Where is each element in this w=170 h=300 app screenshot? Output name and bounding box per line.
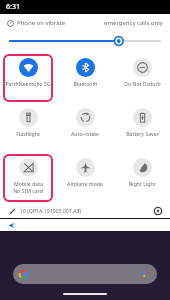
staticText: Bluetooth: [73, 80, 98, 87]
other: Vibrate: [7, 20, 14, 27]
staticText: 6:31: [6, 2, 20, 12]
staticText: Auto-rotate: [71, 130, 99, 137]
staticText: Do Not Disturb: [124, 80, 161, 87]
button[interactable]: ParthNeemuJio 5G: [3, 54, 53, 102]
button[interactable]: Battery Saver: [117, 104, 167, 152]
button[interactable]: Airplane mode: [60, 154, 110, 202]
button[interactable]: Collapse: [0, 219, 170, 231]
button[interactable]: Flashlight: [3, 104, 53, 152]
button[interactable]: Night Light: [117, 154, 167, 202]
staticText: Flashlight: [16, 130, 40, 137]
button[interactable]: Brightness: [0, 32, 170, 50]
staticText: No SIM card: [13, 187, 43, 194]
button[interactable]: emergency calls only: [104, 19, 163, 27]
staticText: Phone on vibrate: [17, 19, 66, 27]
button[interactable]: Auto-rotate: [60, 104, 110, 152]
button[interactable]: Mobile data: [3, 154, 53, 202]
button[interactable]: Vibrate: [7, 19, 66, 27]
staticText: Night Light: [128, 180, 156, 187]
button[interactable]: Do Not Disturb: [117, 54, 167, 102]
other: Google Search: [19, 270, 28, 279]
other: Google Assistant: [142, 270, 150, 278]
staticText: Mobile data: [14, 180, 43, 187]
staticText: Battery Saver: [126, 130, 159, 137]
button[interactable]: Bluetooth: [60, 54, 110, 102]
button[interactable]: Edit: [7, 206, 17, 216]
staticText: ParthNeemuJio 5G: [5, 80, 51, 87]
button[interactable]: Settings: [152, 205, 163, 216]
staticText: Airplane mode: [67, 180, 103, 187]
staticText: 10 (QP1A.191005.007.A3): [20, 207, 82, 214]
button[interactable]: Google Search: [13, 264, 157, 284]
